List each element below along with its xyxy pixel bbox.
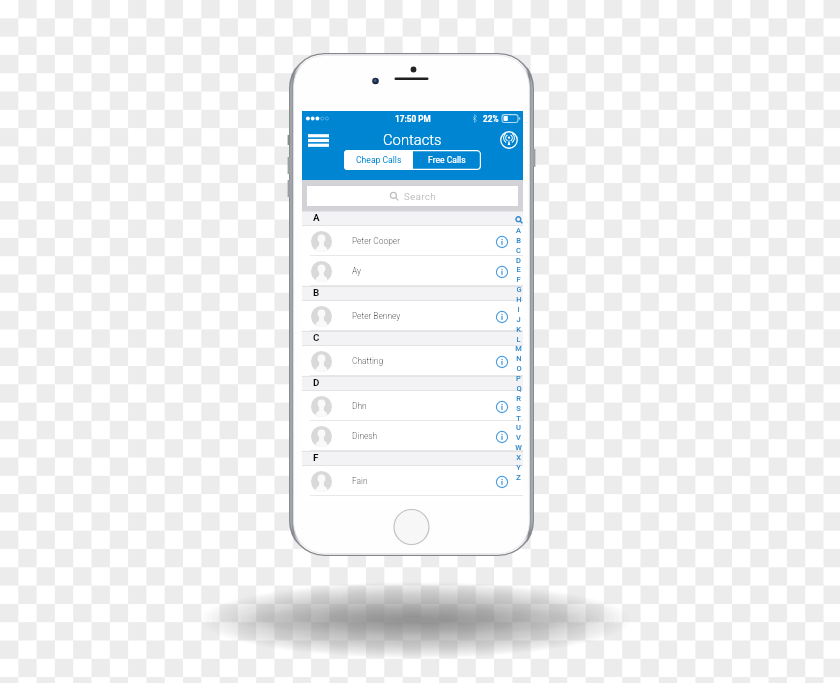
button[interactable]: Dhn xyxy=(302,391,523,421)
staticText: Ay xyxy=(352,266,362,276)
staticText: B xyxy=(313,287,320,298)
staticText: G xyxy=(516,285,522,294)
button[interactable]: Info about Peter Benney xyxy=(494,309,509,324)
staticText: V xyxy=(516,433,521,442)
staticText: Q xyxy=(516,384,522,393)
staticText: 17:50 PM xyxy=(395,114,431,124)
button[interactable]: Chatting xyxy=(302,346,523,376)
staticText: F xyxy=(516,275,521,284)
staticText: L xyxy=(516,335,521,344)
staticText: Chatting xyxy=(352,356,384,366)
staticText: Y xyxy=(516,463,521,472)
button[interactable]: Alphabet index xyxy=(514,211,523,476)
button[interactable]: Cheap Calls xyxy=(344,150,413,170)
button[interactable]: Menu xyxy=(306,132,331,149)
staticText: Fain xyxy=(352,476,368,486)
staticText: S xyxy=(516,404,521,413)
button[interactable]: Free Calls xyxy=(413,150,481,170)
button[interactable]: Info about Dinesh xyxy=(494,429,509,444)
staticText: 22% xyxy=(483,114,499,124)
button[interactable]: Broadcast xyxy=(499,130,519,150)
staticText: Dhn xyxy=(352,401,367,411)
staticText: E xyxy=(516,265,521,274)
staticText: P xyxy=(516,374,521,383)
staticText: A xyxy=(516,226,521,235)
button[interactable]: Info about Ay xyxy=(494,264,509,279)
staticText: Dinesh xyxy=(352,431,378,441)
staticText: U xyxy=(516,423,521,432)
staticText: J xyxy=(516,315,521,324)
staticText: C xyxy=(516,246,521,255)
staticText: Free Calls xyxy=(428,155,466,165)
button[interactable]: Info about Chatting xyxy=(494,354,509,369)
staticText: F xyxy=(313,452,319,463)
staticText: C xyxy=(313,332,320,343)
button[interactable]: Dinesh xyxy=(302,421,523,451)
staticText: Peter Benney xyxy=(352,311,401,321)
button[interactable]: Fain xyxy=(302,466,523,496)
staticText: N xyxy=(516,354,522,363)
staticText: Cheap Calls xyxy=(356,155,402,165)
button[interactable]: Peter Benney xyxy=(302,301,523,331)
button[interactable]: Info about Fain xyxy=(494,474,509,489)
button[interactable]: Search xyxy=(307,186,518,206)
staticText: R xyxy=(516,394,521,403)
staticText: Z xyxy=(516,473,521,482)
staticText: K xyxy=(516,325,521,334)
staticText: D xyxy=(516,256,521,265)
button[interactable]: Peter Cooper xyxy=(302,226,523,256)
staticText: Search xyxy=(404,191,437,202)
staticText: Peter Cooper xyxy=(352,236,401,246)
staticText: Contacts xyxy=(383,131,442,148)
staticText: X xyxy=(516,453,521,462)
staticText: O xyxy=(516,364,522,373)
staticText: T xyxy=(516,414,521,423)
staticText: D xyxy=(313,377,320,388)
staticText: M xyxy=(515,344,522,353)
button[interactable]: Ay xyxy=(302,256,523,286)
button[interactable]: Info about Peter Cooper xyxy=(494,234,509,249)
staticText: A xyxy=(313,212,320,223)
staticText: H xyxy=(516,295,522,304)
staticText: I xyxy=(517,305,520,314)
button[interactable]: Info about Dhn xyxy=(494,399,509,414)
staticText: B xyxy=(516,236,521,245)
staticText: W xyxy=(515,443,522,452)
